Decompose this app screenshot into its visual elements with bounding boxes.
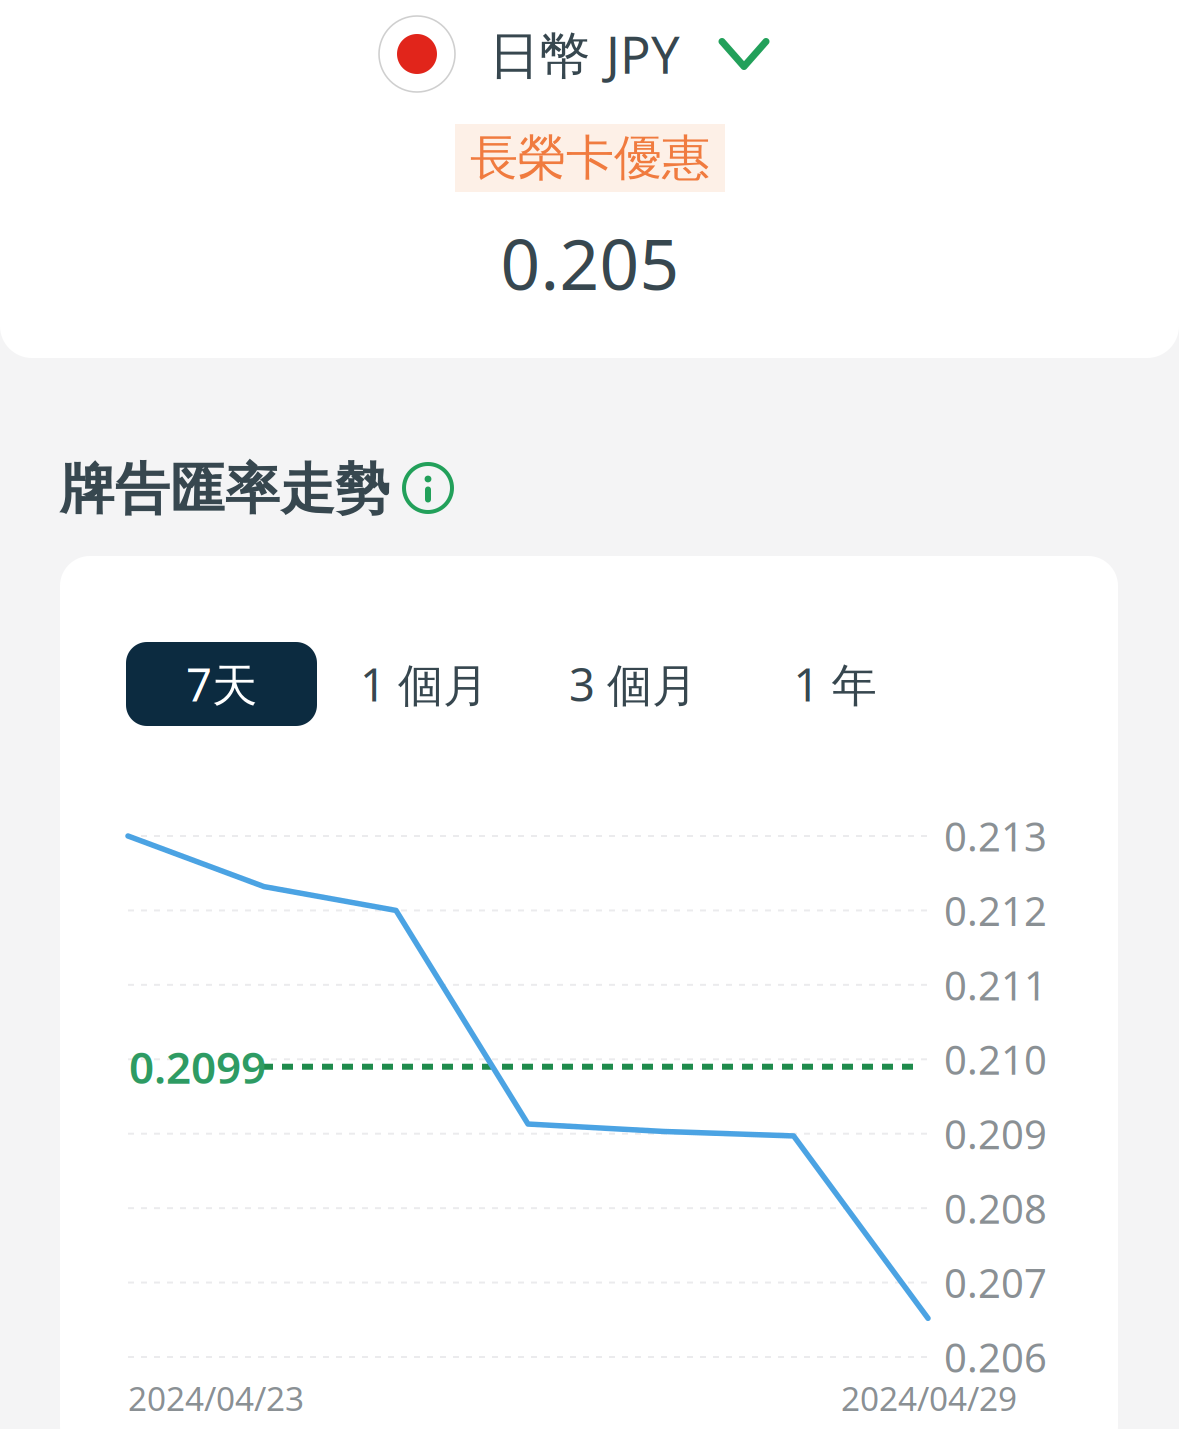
staticText: 0.206 (944, 1330, 1047, 1383)
staticText: 7天 (186, 654, 257, 714)
button[interactable]: 1 年 (735, 642, 935, 726)
staticText: 日幣 JPY (489, 20, 680, 88)
staticText: 3 個月 (569, 654, 697, 714)
button[interactable]: 日幣 JPY (379, 16, 770, 92)
button[interactable]: 7天 (126, 642, 317, 726)
button[interactable]: More info (404, 464, 452, 512)
staticText: 0.2099 (129, 1037, 266, 1096)
button[interactable]: 1 個月 (317, 642, 531, 726)
staticText: 0.212 (944, 884, 1047, 937)
staticText: 0.208 (944, 1182, 1047, 1235)
staticText: 0.207 (944, 1256, 1047, 1309)
staticText: 0.211 (944, 958, 1047, 1011)
staticText: 1 個月 (360, 654, 488, 714)
staticText: 0.209 (944, 1107, 1047, 1160)
staticText: 0.210 (944, 1033, 1047, 1086)
staticText: 0.205 (500, 217, 679, 309)
staticText: 1 年 (793, 654, 876, 714)
staticText: 2024/04/23 (128, 1376, 304, 1420)
staticText: 0.213 (944, 809, 1047, 862)
button[interactable]: 3 個月 (531, 642, 735, 726)
staticText: 長榮卡優惠 (470, 128, 710, 187)
staticText: 2024/04/29 (841, 1376, 1017, 1420)
staticText: 牌告匯率走勢 (60, 456, 390, 523)
